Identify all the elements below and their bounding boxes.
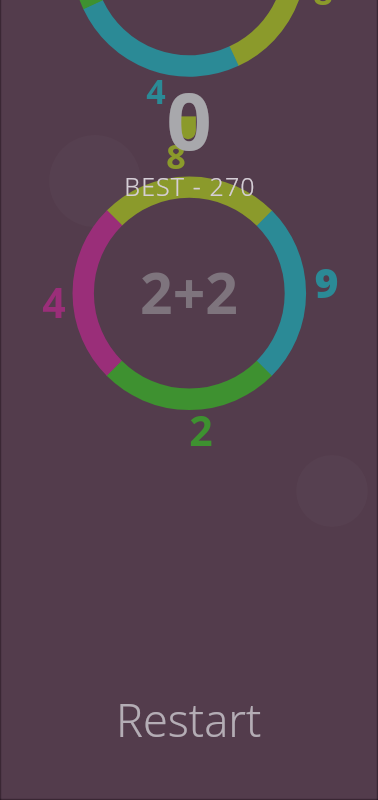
- staticText: 4: [42, 274, 66, 330]
- staticText: 2+2: [140, 253, 238, 331]
- staticText: 4: [146, 68, 166, 114]
- staticText: Restart: [116, 689, 262, 750]
- staticText: BEST - 270: [124, 169, 256, 203]
- staticText: 2: [189, 402, 213, 458]
- staticText: 0: [166, 66, 212, 174]
- staticText: 8: [313, 0, 333, 15]
- staticText: 9: [314, 254, 339, 310]
- button[interactable]: Restart: [89, 684, 289, 754]
- staticText: 8: [166, 133, 186, 179]
